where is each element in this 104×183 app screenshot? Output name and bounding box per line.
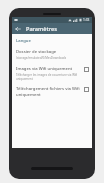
staticText: Téléchargement fichiers via Wifi uniquem…: [16, 86, 81, 98]
staticText: /storage/emulated/0/MesDownloads: [16, 56, 67, 60]
staticText: Dossier de stockage: [16, 49, 57, 55]
staticText: Paramètres: [26, 25, 57, 33]
staticText: Images via Wifi uniquement: [16, 66, 73, 72]
button[interactable]: Téléchargement fichiers via Wifi uniquem…: [12, 86, 92, 98]
button[interactable]: Retour: [12, 23, 23, 34]
button[interactable]: Dossier de stockage: [12, 49, 92, 60]
button[interactable]: Téléchargement fichiers via Wifi uniquem…: [83, 86, 90, 93]
button[interactable]: Images via Wifi uniquement: [12, 66, 92, 81]
button[interactable]: Images via Wifi uniquement: [83, 66, 90, 73]
staticText: Langue: [16, 38, 31, 44]
staticText: 1:33: [83, 18, 90, 22]
staticText: Télécharger les images de couverture via…: [16, 73, 81, 81]
